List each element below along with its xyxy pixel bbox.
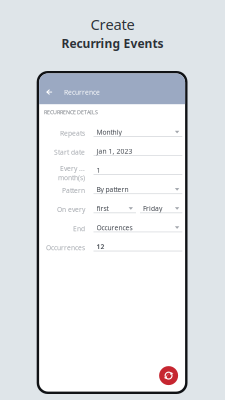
staticText: 1 [96, 166, 100, 175]
staticText: Jan 1, 2023 [96, 147, 132, 156]
staticText: End [73, 224, 85, 233]
staticText: month(s) [58, 173, 85, 182]
staticText: Start date [54, 148, 85, 157]
button[interactable]: Repeat [159, 366, 178, 385]
staticText: Monthly [96, 128, 121, 137]
staticText: RECURRENCE DETAILS [44, 109, 98, 116]
staticText: 12 [96, 242, 104, 251]
staticText: Pattern [62, 186, 85, 195]
button[interactable]: Back [44, 86, 55, 98]
staticText: By pattern [96, 185, 128, 194]
staticText: Every ... [60, 164, 85, 173]
staticText: Occurences [96, 223, 132, 232]
staticText: Repeats [60, 129, 85, 138]
staticText: first [96, 204, 108, 213]
staticText: On every [57, 205, 85, 214]
staticText: Create [90, 15, 134, 34]
staticText: Recurrence [64, 88, 100, 96]
staticText: Recurring Events [61, 35, 163, 51]
staticText: Occurrences [46, 243, 85, 252]
staticText: Friday [143, 204, 162, 213]
